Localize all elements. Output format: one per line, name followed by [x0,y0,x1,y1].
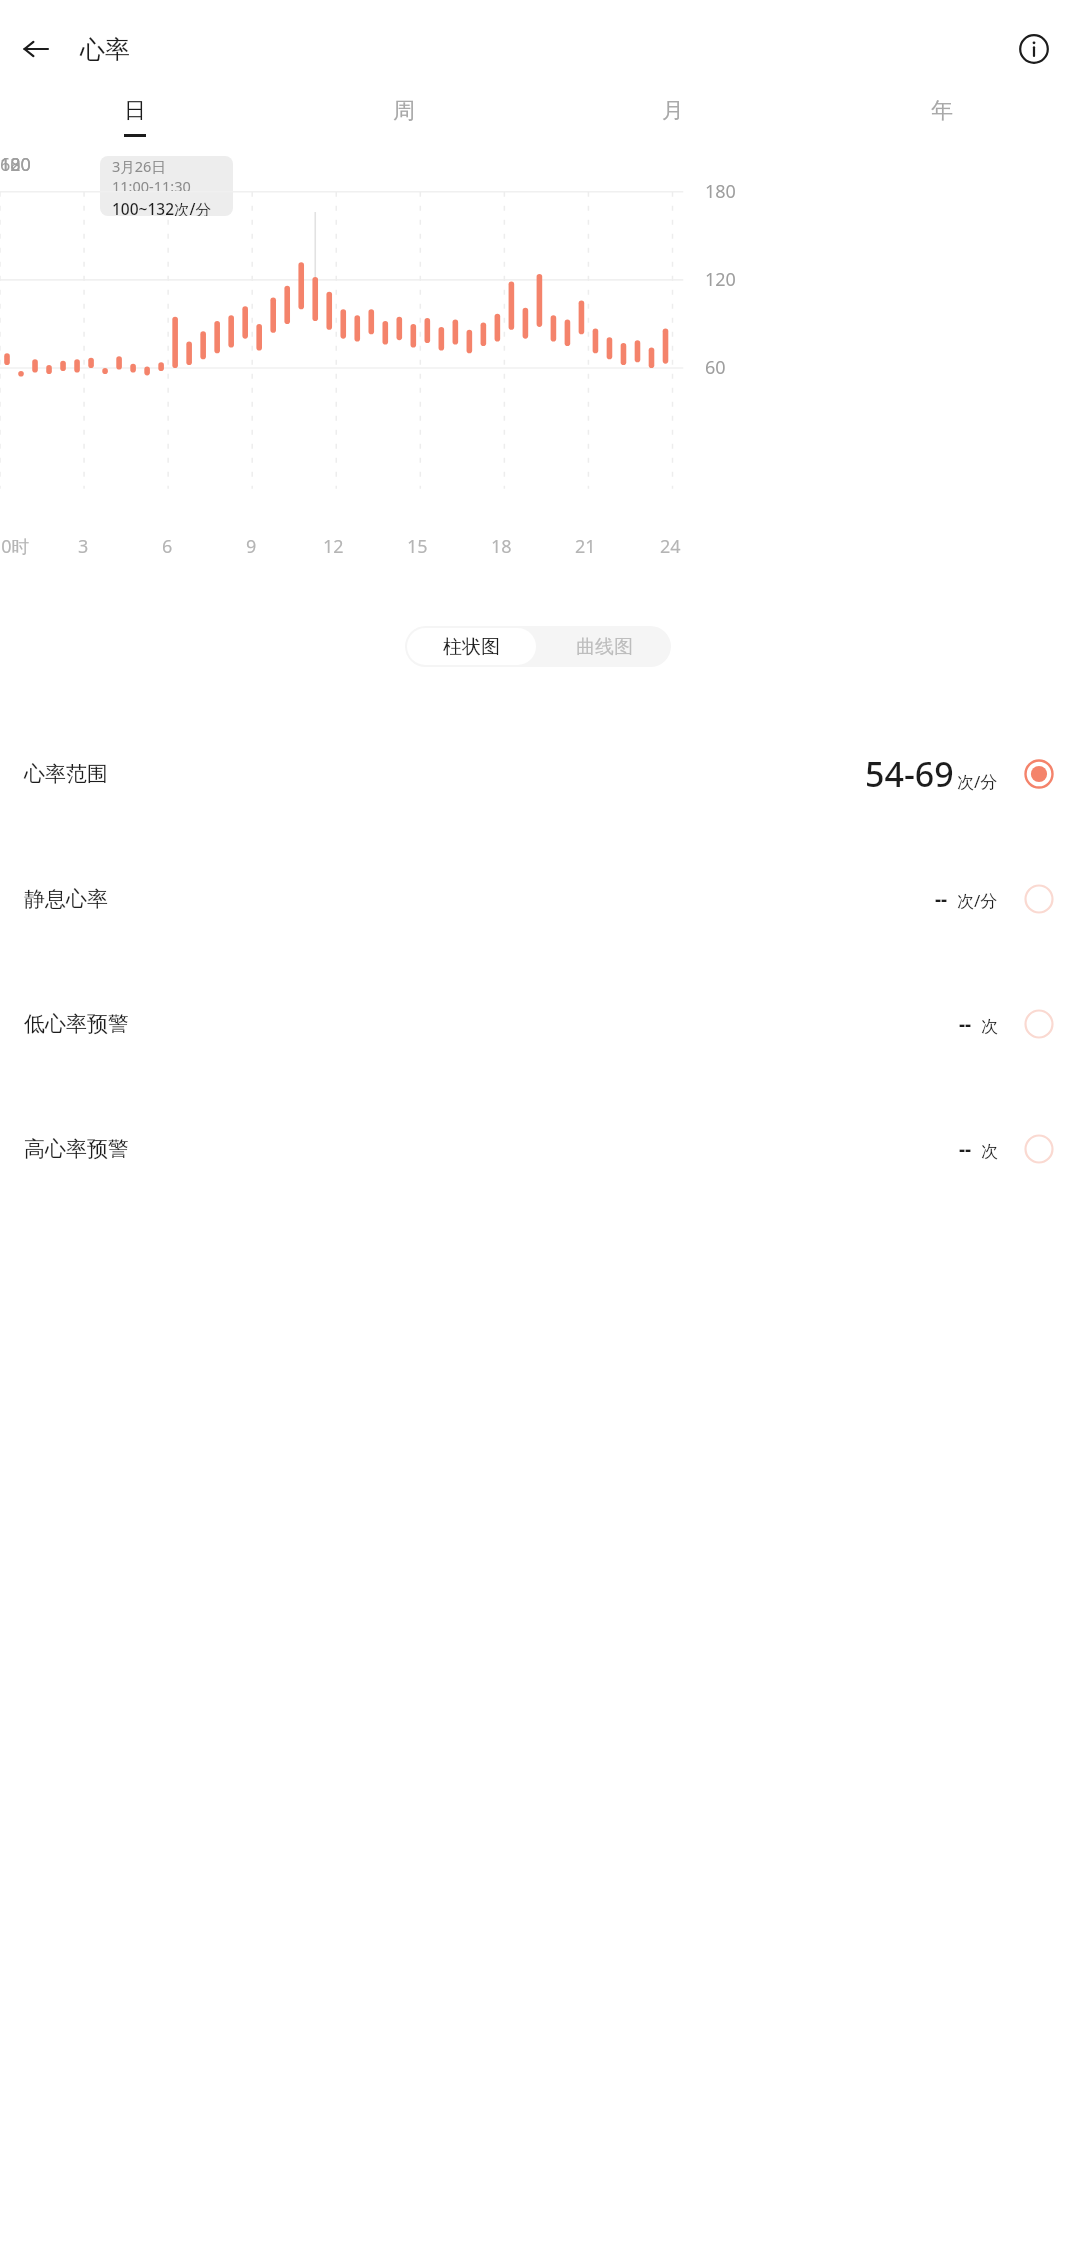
staticText: 心率范围 [24,761,108,787]
staticText: 年 [931,97,953,125]
button[interactable]: Back [10,23,62,75]
staticText: 60 [0,152,21,177]
staticText: 柱状图 [443,635,500,659]
button[interactable]: 柱状图 [407,628,536,665]
button[interactable]: 周 [269,82,538,152]
button[interactable]: 月 [538,82,807,152]
staticText: 180 [705,179,736,204]
staticText: 次/分 [957,770,998,793]
staticText: -- [959,1011,972,1037]
button[interactable]: 日 [0,82,269,152]
staticText: 3 [78,534,89,559]
staticText: 心率 [80,34,130,65]
staticText: 3月26日 11:00-11:30 [112,156,233,196]
staticText: 9 [246,534,257,559]
button[interactable]: Info [1006,21,1062,77]
staticText: 周 [393,97,415,125]
staticText: 次 [981,1016,998,1037]
button[interactable]: 低心率预警 [0,961,1076,1086]
staticText: 12 [323,534,344,559]
staticText: 26日 0时 [0,534,30,559]
staticText: -- [959,1136,972,1162]
staticText: 120 [0,152,31,177]
staticText: 21 [575,534,596,559]
staticText: 静息心率 [24,886,108,912]
button[interactable]: 年 [807,82,1076,152]
staticText: 24 [660,534,681,559]
staticText: 6 [162,534,173,559]
button[interactable]: 静息心率 [0,836,1076,961]
staticText: 高心率预警 [24,1136,129,1162]
button[interactable]: 高心率预警 [0,1086,1076,1211]
staticText: 100~132次/分 [112,198,212,216]
staticText: 60 [705,355,726,380]
staticText: 120 [705,267,736,292]
staticText: 54-69 [865,751,954,797]
staticText: 次 [981,1141,998,1162]
staticText: 曲线图 [576,635,633,659]
staticText: 日 [124,97,146,125]
staticText: 180 [0,152,31,177]
staticText: 月 [662,97,684,125]
staticText: 18 [491,534,512,559]
button[interactable]: 心率范围 [0,711,1076,836]
button[interactable]: 曲线图 [538,626,671,667]
staticText: 次/分 [957,889,998,912]
staticText: 低心率预警 [24,1011,129,1037]
staticText: -- [935,886,948,912]
staticText: 15 [407,534,428,559]
